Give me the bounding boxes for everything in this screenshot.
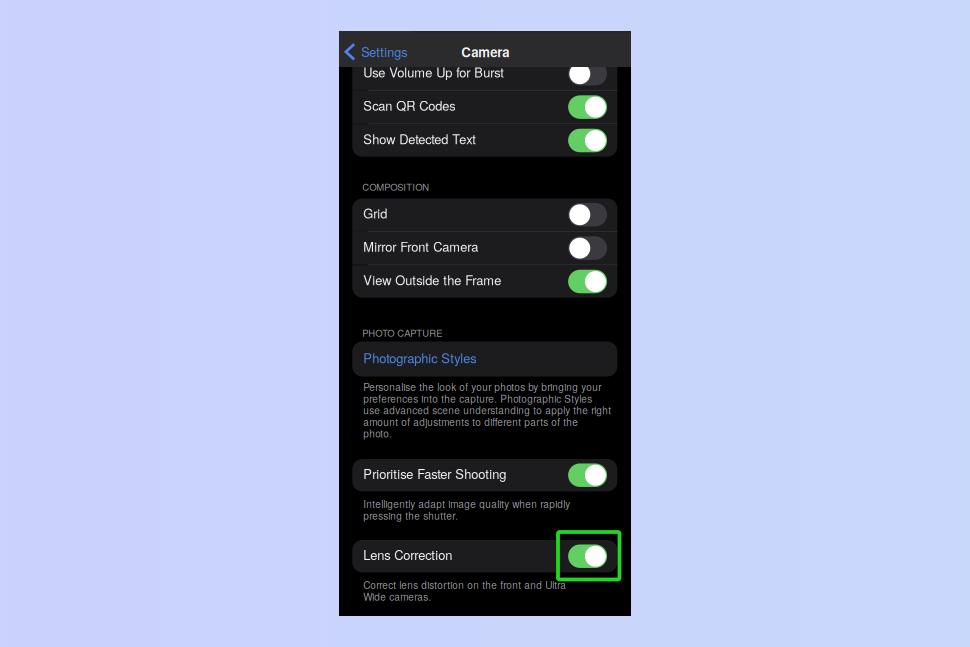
staticText: PHOTO CAPTURE: [362, 326, 442, 340]
staticText: Wide cameras.: [363, 589, 431, 603]
staticText: photo.: [363, 426, 392, 440]
staticText: preferences into the capture. Photograph…: [363, 391, 592, 405]
button[interactable]: Scan QR Codes: [352, 91, 617, 123]
staticText: pressing the shutter.: [363, 508, 458, 522]
staticText: Prioritise Faster Shooting: [363, 464, 506, 483]
staticText: Show Detected Text: [363, 129, 476, 148]
button[interactable]: Prioritise Faster Shooting: [352, 459, 617, 491]
button[interactable]: View Outside the Frame: [352, 265, 617, 298]
button[interactable]: Grid: [352, 198, 617, 231]
staticText: Intelligently adapt image quality when r…: [363, 497, 570, 511]
staticText: use advanced scene understanding to appl…: [363, 403, 611, 417]
button[interactable]: Lens Correction: [352, 540, 617, 572]
staticText: Correct lens distortion on the front and…: [363, 578, 566, 592]
staticText: Settings: [361, 42, 407, 61]
staticText: Personalise the look of your photos by b…: [363, 380, 601, 394]
staticText: View Outside the Frame: [363, 270, 501, 289]
button[interactable]: Settings: [339, 31, 413, 67]
button[interactable]: Mirror Front Camera: [352, 232, 617, 264]
staticText: Grid: [363, 204, 387, 222]
staticText: amount of adjustments to different parts…: [363, 414, 578, 429]
staticText: Camera: [461, 42, 509, 61]
staticText: COMPOSITION: [362, 180, 429, 194]
button[interactable]: Show Detected Text: [352, 124, 617, 157]
staticText: Use Volume Up for Burst: [363, 63, 504, 81]
staticText: Photographic Styles: [363, 349, 476, 367]
button[interactable]: Photographic Styles: [352, 341, 617, 376]
staticText: Mirror Front Camera: [363, 237, 478, 255]
button[interactable]: Use Volume Up for Burst: [352, 57, 617, 90]
staticText: Lens Correction: [363, 545, 452, 564]
staticText: Scan QR Codes: [363, 96, 455, 114]
